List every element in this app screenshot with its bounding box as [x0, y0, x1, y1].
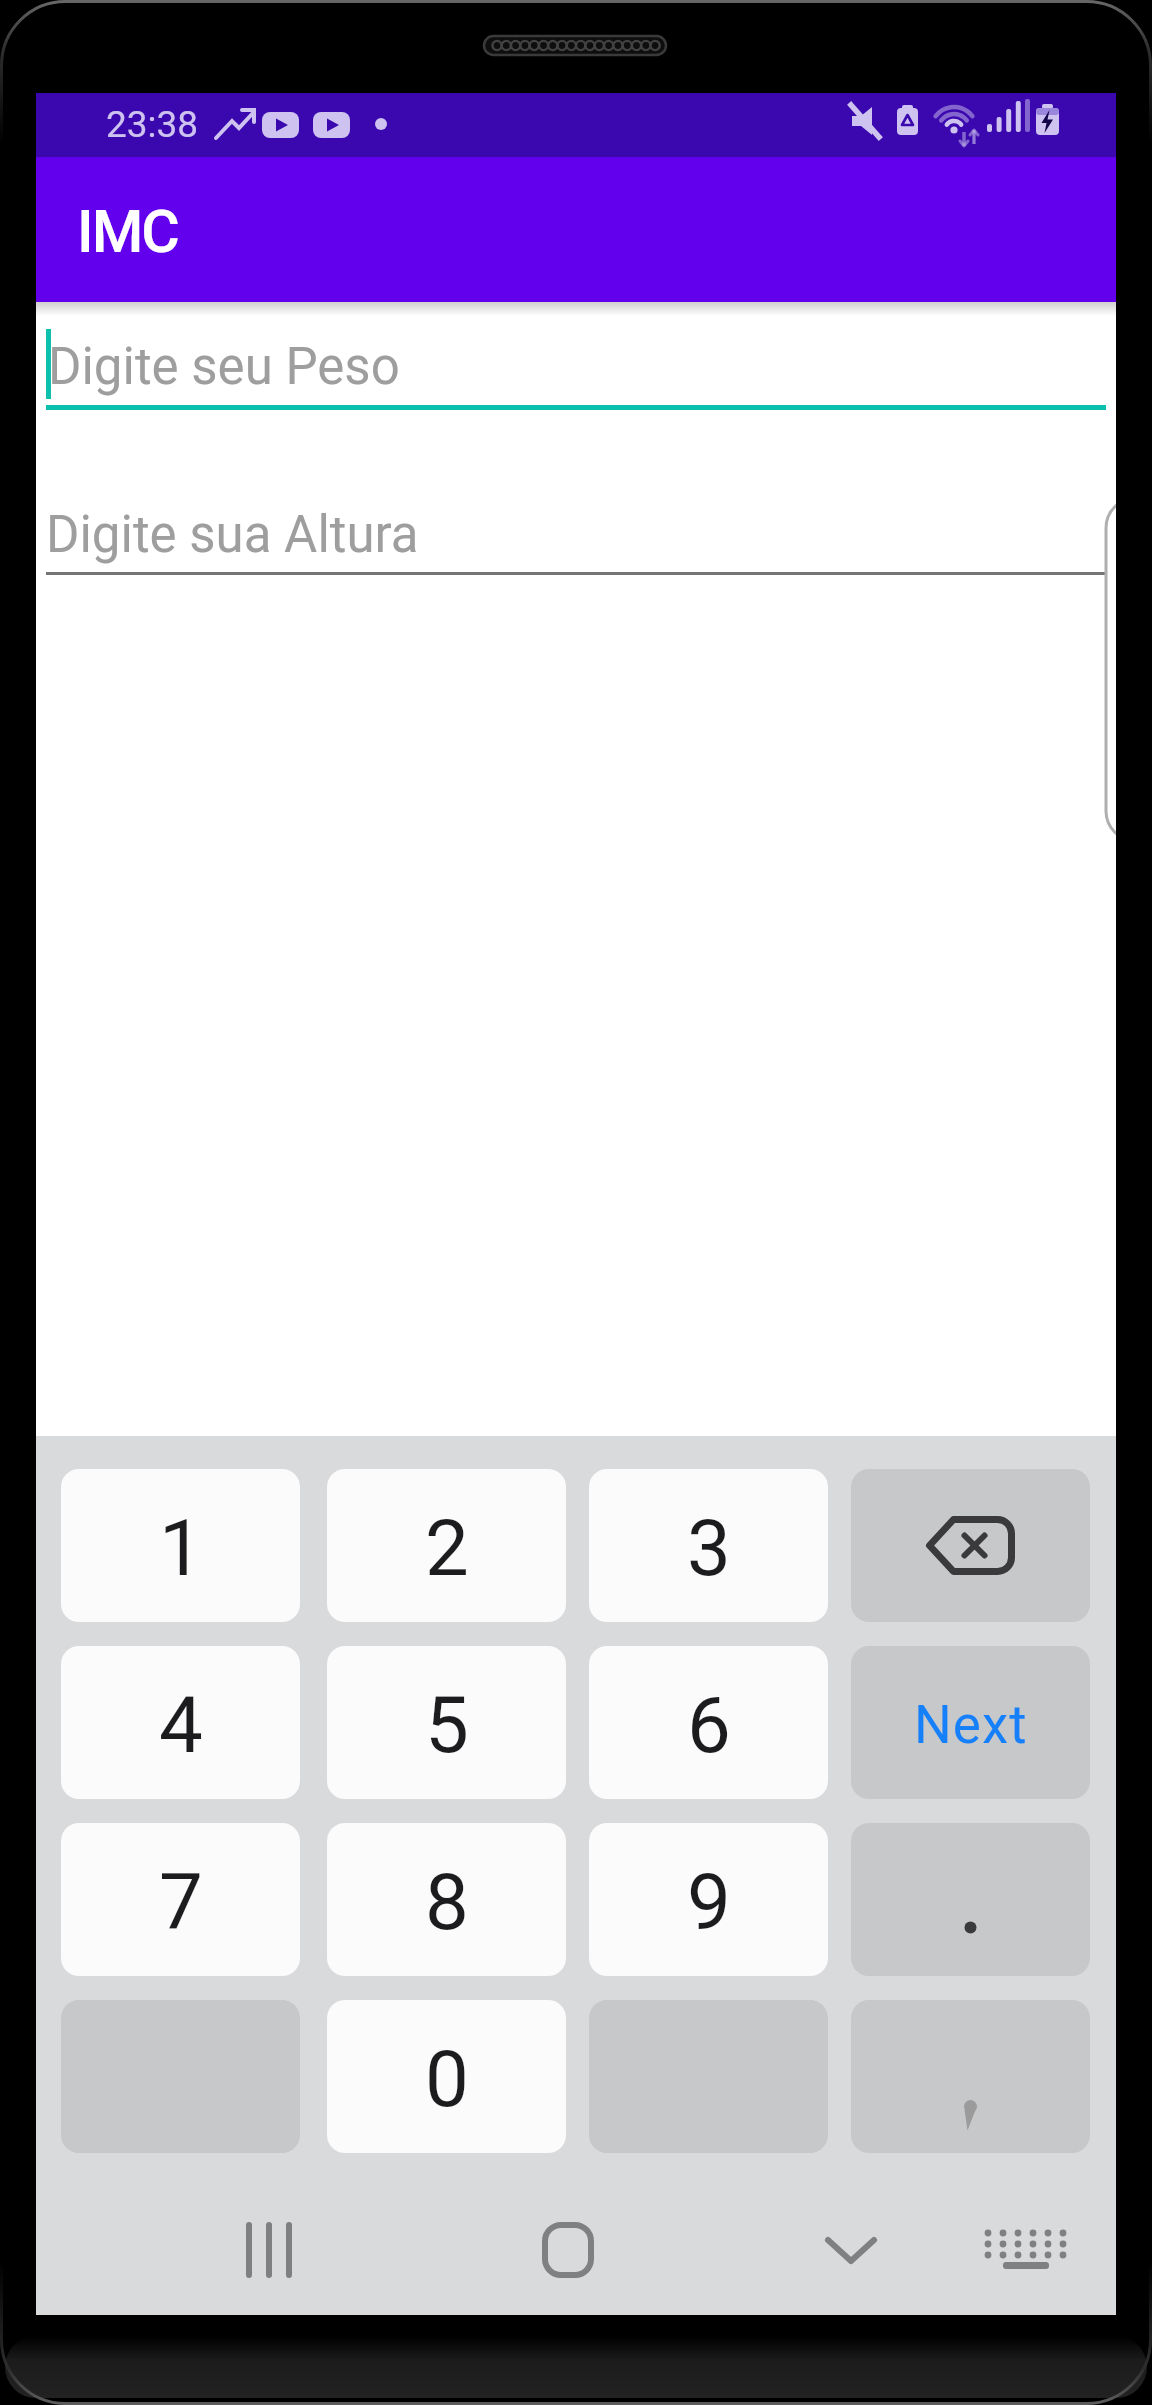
button[interactable] [801, 2200, 901, 2300]
staticText: 23:38 [106, 103, 199, 146]
staticText: 7 [159, 1857, 203, 1948]
staticText: Digite seu Peso [48, 337, 400, 397]
button[interactable]: 9 [589, 1823, 828, 1976]
button[interactable]: Next [851, 1646, 1090, 1799]
staticText: 2 [425, 1503, 469, 1594]
button[interactable]: 6 [589, 1646, 828, 1799]
staticText: 4 [159, 1680, 203, 1771]
staticText: Next [914, 1694, 1028, 1756]
staticText: 5 [425, 1680, 469, 1771]
staticText: Digite sua Altura [46, 505, 419, 565]
button[interactable]: 4 [61, 1646, 300, 1799]
staticText: 6 [687, 1680, 731, 1771]
staticText: 1 [159, 1503, 203, 1594]
button[interactable] [976, 2200, 1076, 2300]
button[interactable] [851, 2000, 1090, 2153]
staticText: 8 [425, 1857, 469, 1948]
button[interactable] [851, 1469, 1090, 1622]
button[interactable]: 3 [589, 1469, 828, 1622]
button[interactable]: 1 [61, 1469, 300, 1622]
button[interactable] [46, 493, 1106, 575]
button[interactable] [851, 1823, 1090, 1976]
button[interactable]: 8 [327, 1823, 566, 1976]
staticText: 9 [687, 1857, 731, 1948]
staticText: 0 [425, 2034, 469, 2125]
button[interactable]: 7 [61, 1823, 300, 1976]
button[interactable] [518, 2200, 618, 2300]
button[interactable]: 5 [327, 1646, 566, 1799]
staticText: IMC [77, 197, 178, 266]
button[interactable] [219, 2200, 319, 2300]
staticText: 3 [687, 1503, 731, 1594]
button[interactable]: 2 [327, 1469, 566, 1622]
button[interactable] [46, 323, 1106, 410]
button[interactable]: 0 [327, 2000, 566, 2153]
